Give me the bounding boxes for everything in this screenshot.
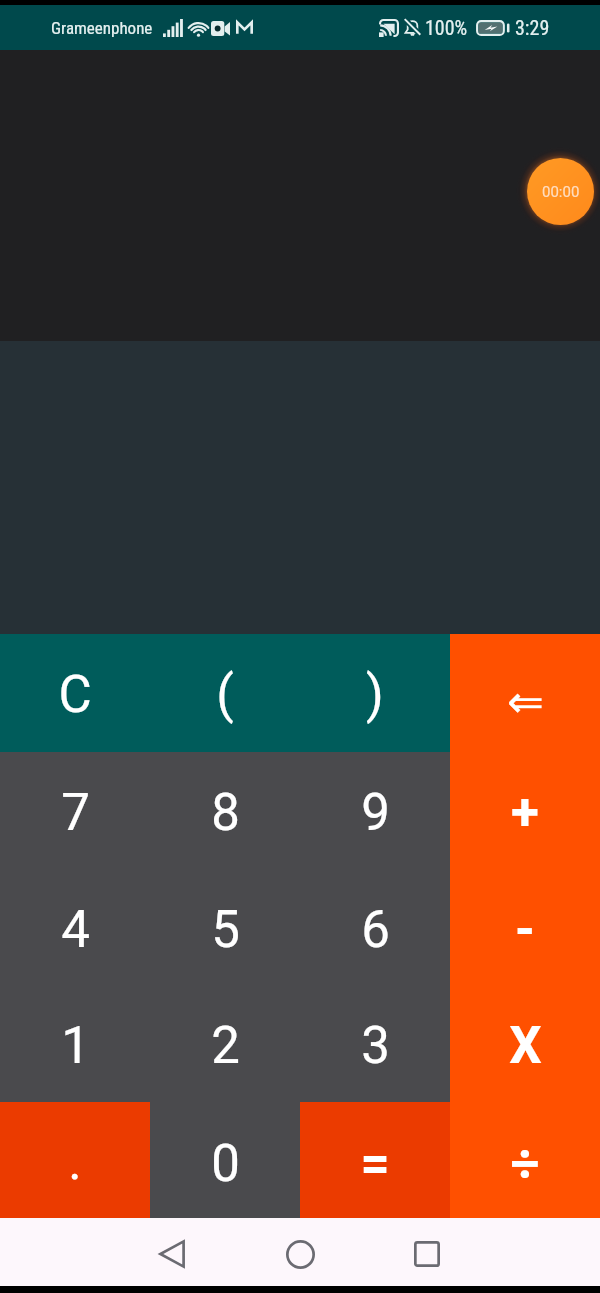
button[interactable]: 6 — [300, 869, 450, 986]
staticText: ⇐ — [507, 676, 544, 727]
button[interactable]: 3 — [300, 986, 450, 1102]
staticText: . — [68, 1132, 82, 1192]
staticText: 0 — [211, 1134, 240, 1194]
button[interactable]: 9 — [300, 752, 450, 869]
staticText: + — [511, 783, 539, 843]
staticText: - — [515, 900, 535, 960]
button[interactable]: Timer 00:00 — [527, 158, 594, 225]
staticText: 7 — [61, 783, 90, 843]
button[interactable]: + — [450, 752, 600, 869]
staticText: C — [58, 665, 92, 725]
button[interactable]: Home — [262, 1218, 338, 1286]
staticText: ( — [216, 665, 234, 725]
button[interactable]: Recents — [389, 1218, 465, 1286]
staticText: 3 — [361, 1016, 390, 1076]
button[interactable]: ) — [300, 634, 450, 752]
staticText: 5 — [211, 900, 240, 960]
staticText: 2 — [211, 1016, 240, 1076]
button[interactable]: 0 — [150, 1102, 300, 1218]
button[interactable]: ÷ — [450, 1102, 600, 1218]
button[interactable]: 7 — [0, 752, 150, 869]
staticText: = — [360, 1134, 390, 1194]
staticText: 9 — [361, 783, 390, 843]
staticText: 6 — [361, 900, 390, 960]
button[interactable]: 5 — [150, 869, 300, 986]
button[interactable]: C — [0, 634, 150, 752]
button[interactable]: 8 — [150, 752, 300, 869]
staticText: X — [509, 1016, 542, 1076]
button[interactable]: Backspace — [450, 634, 600, 752]
staticText: 3:29 — [515, 16, 550, 39]
button[interactable]: 4 — [0, 869, 150, 986]
staticText: ÷ — [510, 1134, 540, 1194]
button[interactable]: X — [450, 986, 600, 1102]
button[interactable]: 2 — [150, 986, 300, 1102]
button[interactable]: = — [300, 1102, 450, 1218]
staticText: Grameenphone — [51, 18, 153, 38]
staticText: 00:00 — [542, 183, 580, 201]
button[interactable]: ( — [150, 634, 300, 752]
button[interactable]: . — [0, 1102, 150, 1218]
staticText: 8 — [211, 783, 240, 843]
button[interactable]: - — [450, 869, 600, 986]
button[interactable]: Back — [134, 1218, 210, 1286]
staticText: ) — [366, 665, 384, 725]
staticText: 100% — [425, 16, 468, 39]
button[interactable]: 1 — [0, 986, 150, 1102]
staticText: 1 — [61, 1016, 90, 1076]
staticText: 4 — [61, 900, 90, 960]
